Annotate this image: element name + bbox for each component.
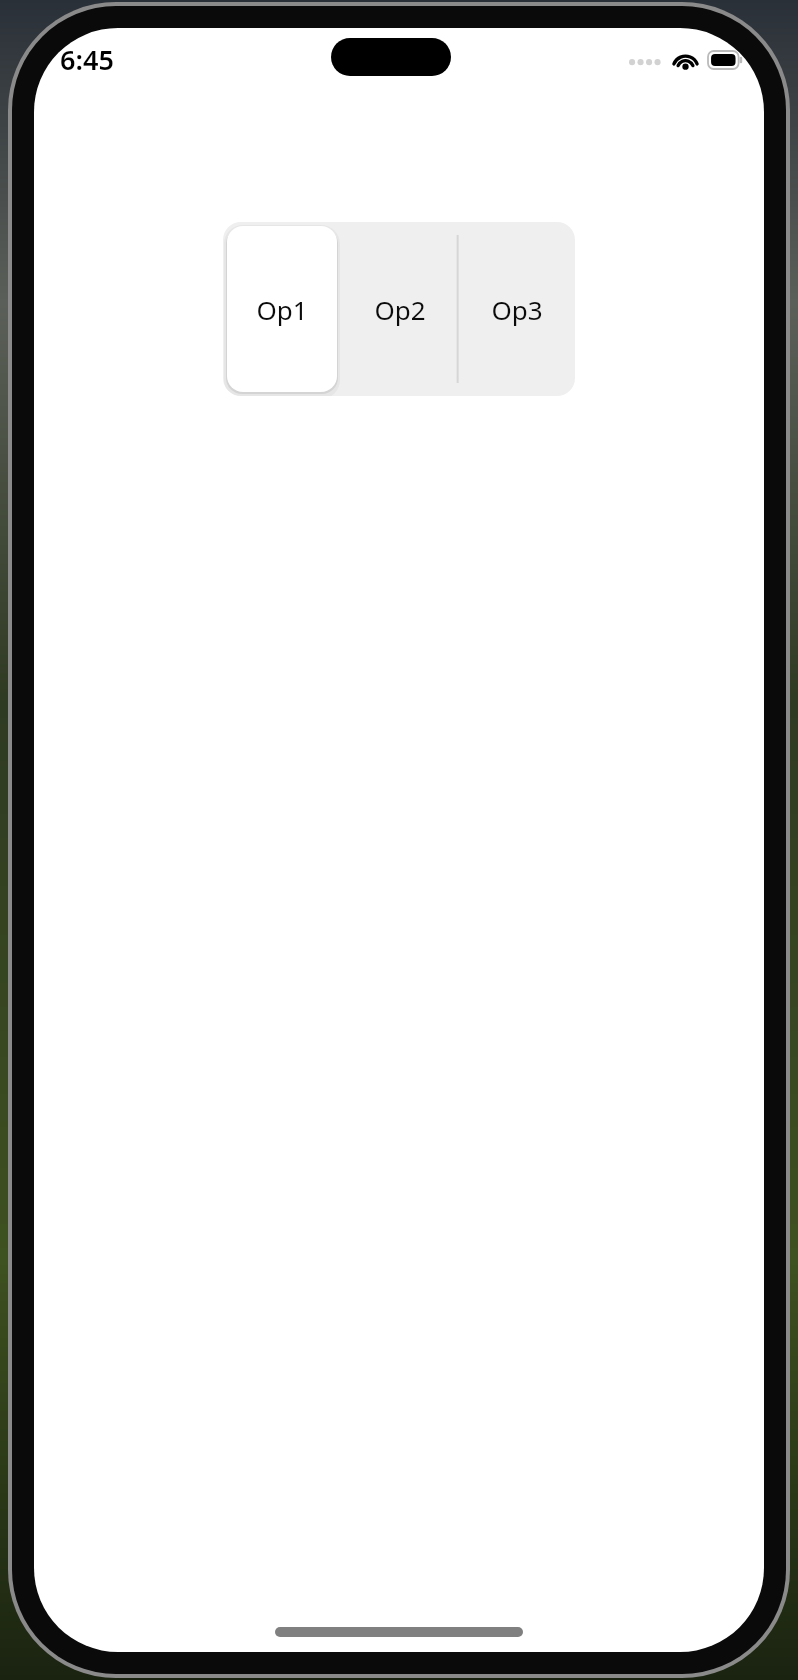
button[interactable]: Op2 bbox=[341, 222, 458, 396]
button[interactable]: Op3 bbox=[458, 222, 575, 396]
staticText: Op2 bbox=[374, 292, 426, 327]
staticText: Op1 bbox=[256, 292, 308, 327]
staticText: Op3 bbox=[491, 292, 543, 327]
staticText: 6:45 bbox=[60, 41, 114, 78]
button[interactable]: Op1 bbox=[223, 222, 341, 396]
